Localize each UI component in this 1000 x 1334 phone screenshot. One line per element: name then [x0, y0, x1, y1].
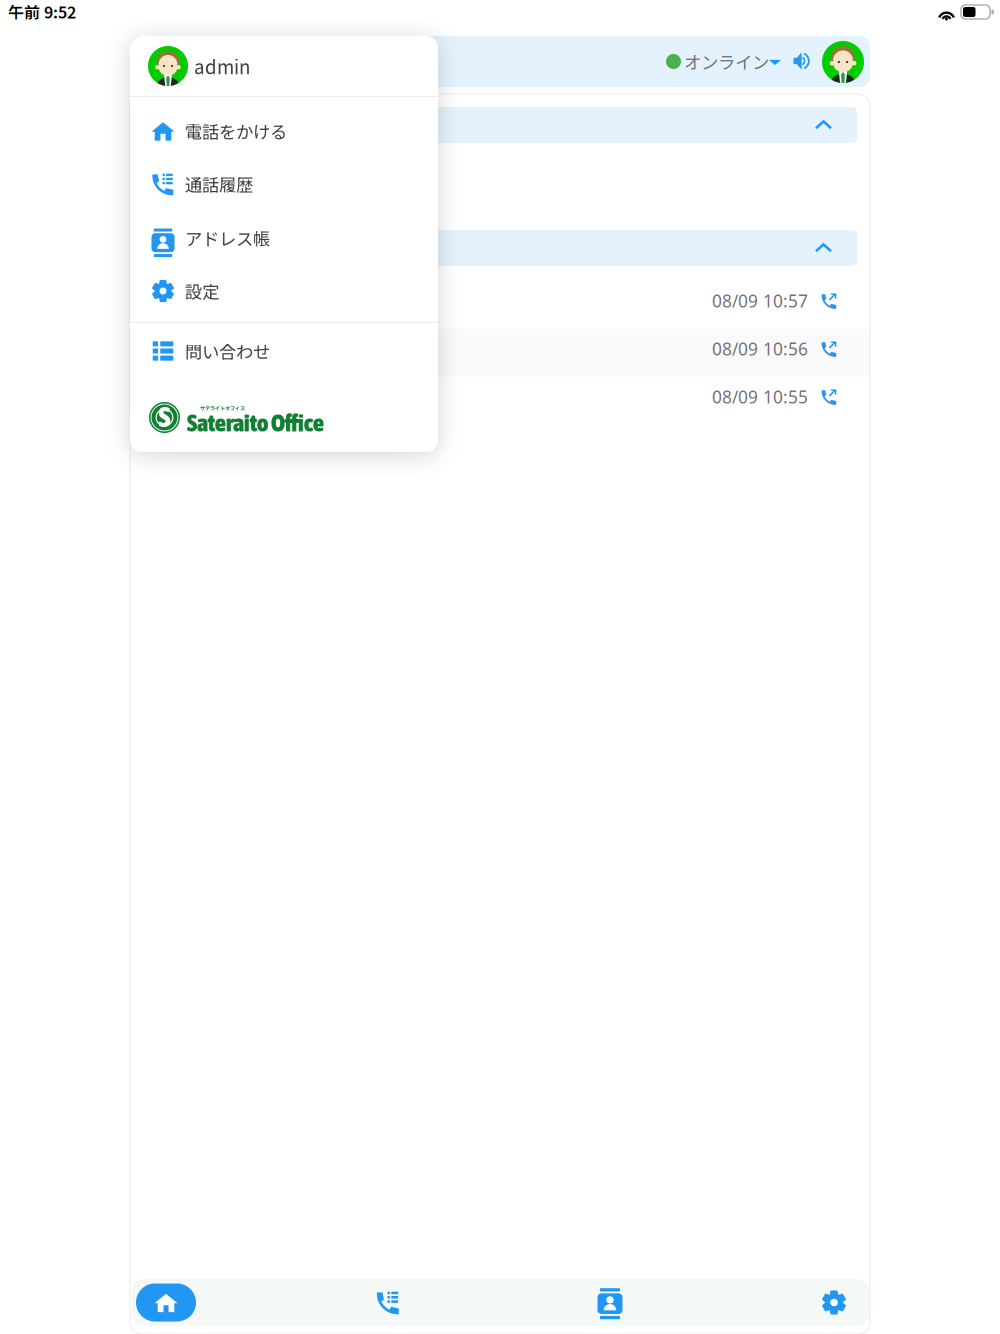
button[interactable]: 通話履歴	[364, 1279, 412, 1326]
button[interactable]: 問い合わせ	[130, 324, 438, 377]
button[interactable]: 電話をかける	[136, 1279, 196, 1326]
button[interactable]: ステータス変更	[762, 45, 788, 79]
button[interactable]: 設定	[130, 264, 438, 317]
button[interactable]: 電話をかける	[130, 104, 438, 157]
staticText: 08/09 10:55	[712, 385, 808, 409]
button[interactable]: admin	[130, 36, 438, 96]
staticText: 午前 9:52	[8, 0, 76, 23]
staticText: S	[158, 401, 170, 433]
button[interactable]: アドレス帳	[586, 1275, 634, 1322]
button[interactable]: 08/09 10:56	[130, 329, 868, 377]
button[interactable]: 設定	[810, 1279, 858, 1326]
button[interactable]: 通話履歴	[130, 157, 438, 210]
button[interactable]	[143, 230, 857, 266]
button[interactable]: 08/09 10:55	[130, 377, 868, 425]
staticText: 設定	[185, 278, 219, 304]
staticText: 通話履歴	[185, 171, 253, 197]
staticText: オンライン	[684, 49, 769, 74]
button[interactable]: アカウント	[822, 41, 864, 83]
staticText: 08/09 10:56	[712, 337, 808, 361]
staticText: admin	[194, 52, 250, 79]
staticText: Sateraito Office	[187, 409, 324, 436]
button[interactable]: 08/09 10:57	[130, 281, 868, 329]
button[interactable]: アドレス帳	[130, 211, 438, 264]
button[interactable]: S	[130, 401, 438, 447]
button[interactable]: 音量	[788, 44, 817, 78]
staticText: 電話をかける	[185, 118, 287, 144]
staticText: サテライトオフィス	[200, 404, 245, 412]
staticText: アドレス帳	[185, 225, 270, 251]
staticText: 問い合わせ	[185, 338, 270, 364]
staticText: 08/09 10:57	[712, 289, 808, 313]
button[interactable]	[143, 107, 857, 143]
